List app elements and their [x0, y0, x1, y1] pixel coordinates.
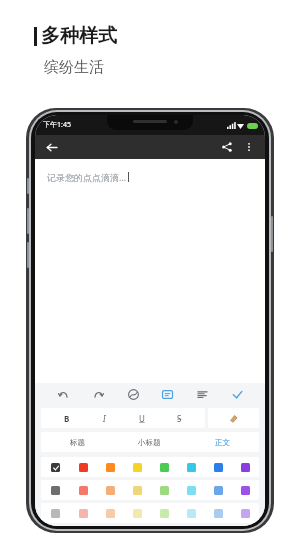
staticText: U [139, 413, 145, 424]
staticText: B [64, 413, 70, 424]
button[interactable]: Color 6 [178, 480, 205, 500]
button[interactable]: Color 4 [124, 480, 151, 500]
staticText: S [177, 413, 182, 424]
staticText: 缤纷生活 [44, 58, 104, 77]
button[interactable]: Share [219, 139, 235, 155]
button[interactable]: Color 4 [124, 457, 151, 477]
button[interactable]: 正文 [186, 432, 259, 452]
staticText: 下午1:45 [43, 120, 71, 130]
button[interactable]: Color 1 [41, 480, 69, 500]
button[interactable]: I [93, 408, 115, 428]
button[interactable]: Color 1 [41, 503, 69, 523]
button[interactable]: Color 3 [97, 480, 124, 500]
button[interactable]: Color 6 [178, 503, 205, 523]
button[interactable]: Color 3 [97, 457, 124, 477]
button[interactable]: Color 1 [41, 457, 69, 477]
staticText: 标题 [70, 438, 85, 447]
button[interactable]: B [56, 408, 78, 428]
button[interactable]: 标题 [41, 432, 113, 452]
button[interactable]: Color 8 [232, 480, 259, 500]
button[interactable]: Color 7 [205, 480, 232, 500]
button[interactable]: Align [195, 387, 209, 401]
button[interactable]: Done [230, 387, 244, 401]
button[interactable]: Color 7 [205, 457, 232, 477]
button[interactable]: Undo [56, 387, 70, 401]
staticText: I [103, 413, 106, 424]
button[interactable]: Back [43, 139, 59, 155]
staticText: 多种样式 [41, 24, 117, 48]
button[interactable]: Color 4 [124, 503, 151, 523]
button[interactable]: Color 2 [69, 457, 97, 477]
button[interactable]: Insert image [126, 387, 140, 401]
button[interactable]: Color 2 [69, 480, 97, 500]
button[interactable]: Color 2 [69, 503, 97, 523]
button[interactable]: Color 7 [205, 503, 232, 523]
button[interactable]: Color 5 [151, 457, 178, 477]
button[interactable]: Format [160, 387, 174, 401]
button[interactable]: Color 3 [97, 503, 124, 523]
button[interactable]: 小标题 [113, 432, 186, 452]
button[interactable]: Color 8 [232, 457, 259, 477]
button[interactable]: S [168, 408, 190, 428]
button[interactable]: Color 5 [151, 503, 178, 523]
button[interactable]: Highlight color [208, 408, 259, 428]
staticText: 正文 [215, 438, 230, 447]
button[interactable]: More options [241, 139, 257, 155]
button[interactable]: Color 8 [232, 503, 259, 523]
staticText: 小标题 [138, 438, 161, 447]
button[interactable]: U [131, 408, 153, 428]
button[interactable]: Color 6 [178, 457, 205, 477]
staticText: 记录您的点点滴滴... [47, 171, 127, 183]
button[interactable]: Redo [91, 387, 105, 401]
button[interactable]: Color 5 [151, 480, 178, 500]
